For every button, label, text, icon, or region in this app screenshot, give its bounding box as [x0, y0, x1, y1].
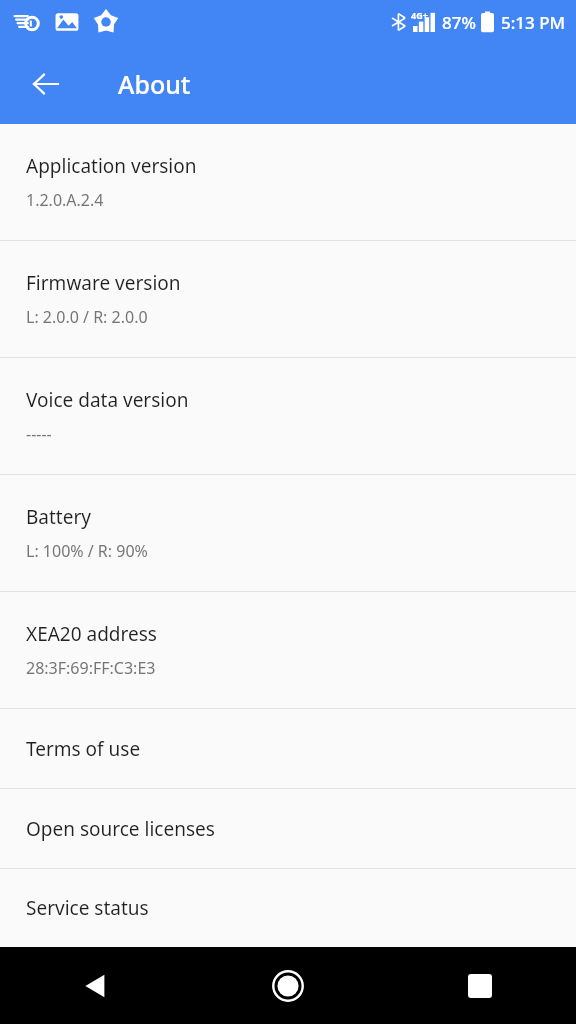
staticText: Service status	[26, 895, 149, 921]
staticText: About	[118, 67, 191, 101]
staticText: 87%	[442, 11, 476, 34]
staticText: Firmware version	[26, 270, 181, 296]
staticText: 4G+	[411, 9, 428, 21]
button[interactable]: Application version	[0, 124, 576, 240]
button[interactable]: Back	[0, 947, 192, 1024]
staticText: Battery	[26, 504, 91, 530]
button[interactable]: Firmware version	[0, 241, 576, 357]
button[interactable]: XEA20 address	[0, 592, 576, 708]
staticText: L: 100% / R: 90%	[26, 540, 148, 562]
staticText: 1.2.0.A.2.4	[26, 189, 104, 211]
staticText: Application version	[26, 153, 197, 179]
button[interactable]: Voice data version	[0, 358, 576, 474]
staticText: XEA20 address	[26, 621, 157, 647]
staticText: 28:3F:69:FF:C3:E3	[26, 657, 156, 679]
staticText: Voice data version	[26, 387, 189, 413]
button[interactable]: Home	[192, 947, 384, 1024]
button[interactable]: Back	[22, 60, 70, 108]
staticText: -----	[26, 423, 52, 445]
staticText: Open source licenses	[26, 816, 215, 842]
staticText: 5:13 PM	[501, 11, 566, 34]
button[interactable]: Service status	[0, 869, 576, 947]
staticText: Terms of use	[26, 736, 141, 762]
button[interactable]: Battery	[0, 475, 576, 591]
button[interactable]: Open source licenses	[0, 789, 576, 868]
button[interactable]: Recent apps	[384, 947, 576, 1024]
staticText: L: 2.0.0 / R: 2.0.0	[26, 306, 148, 328]
button[interactable]: Terms of use	[0, 709, 576, 788]
